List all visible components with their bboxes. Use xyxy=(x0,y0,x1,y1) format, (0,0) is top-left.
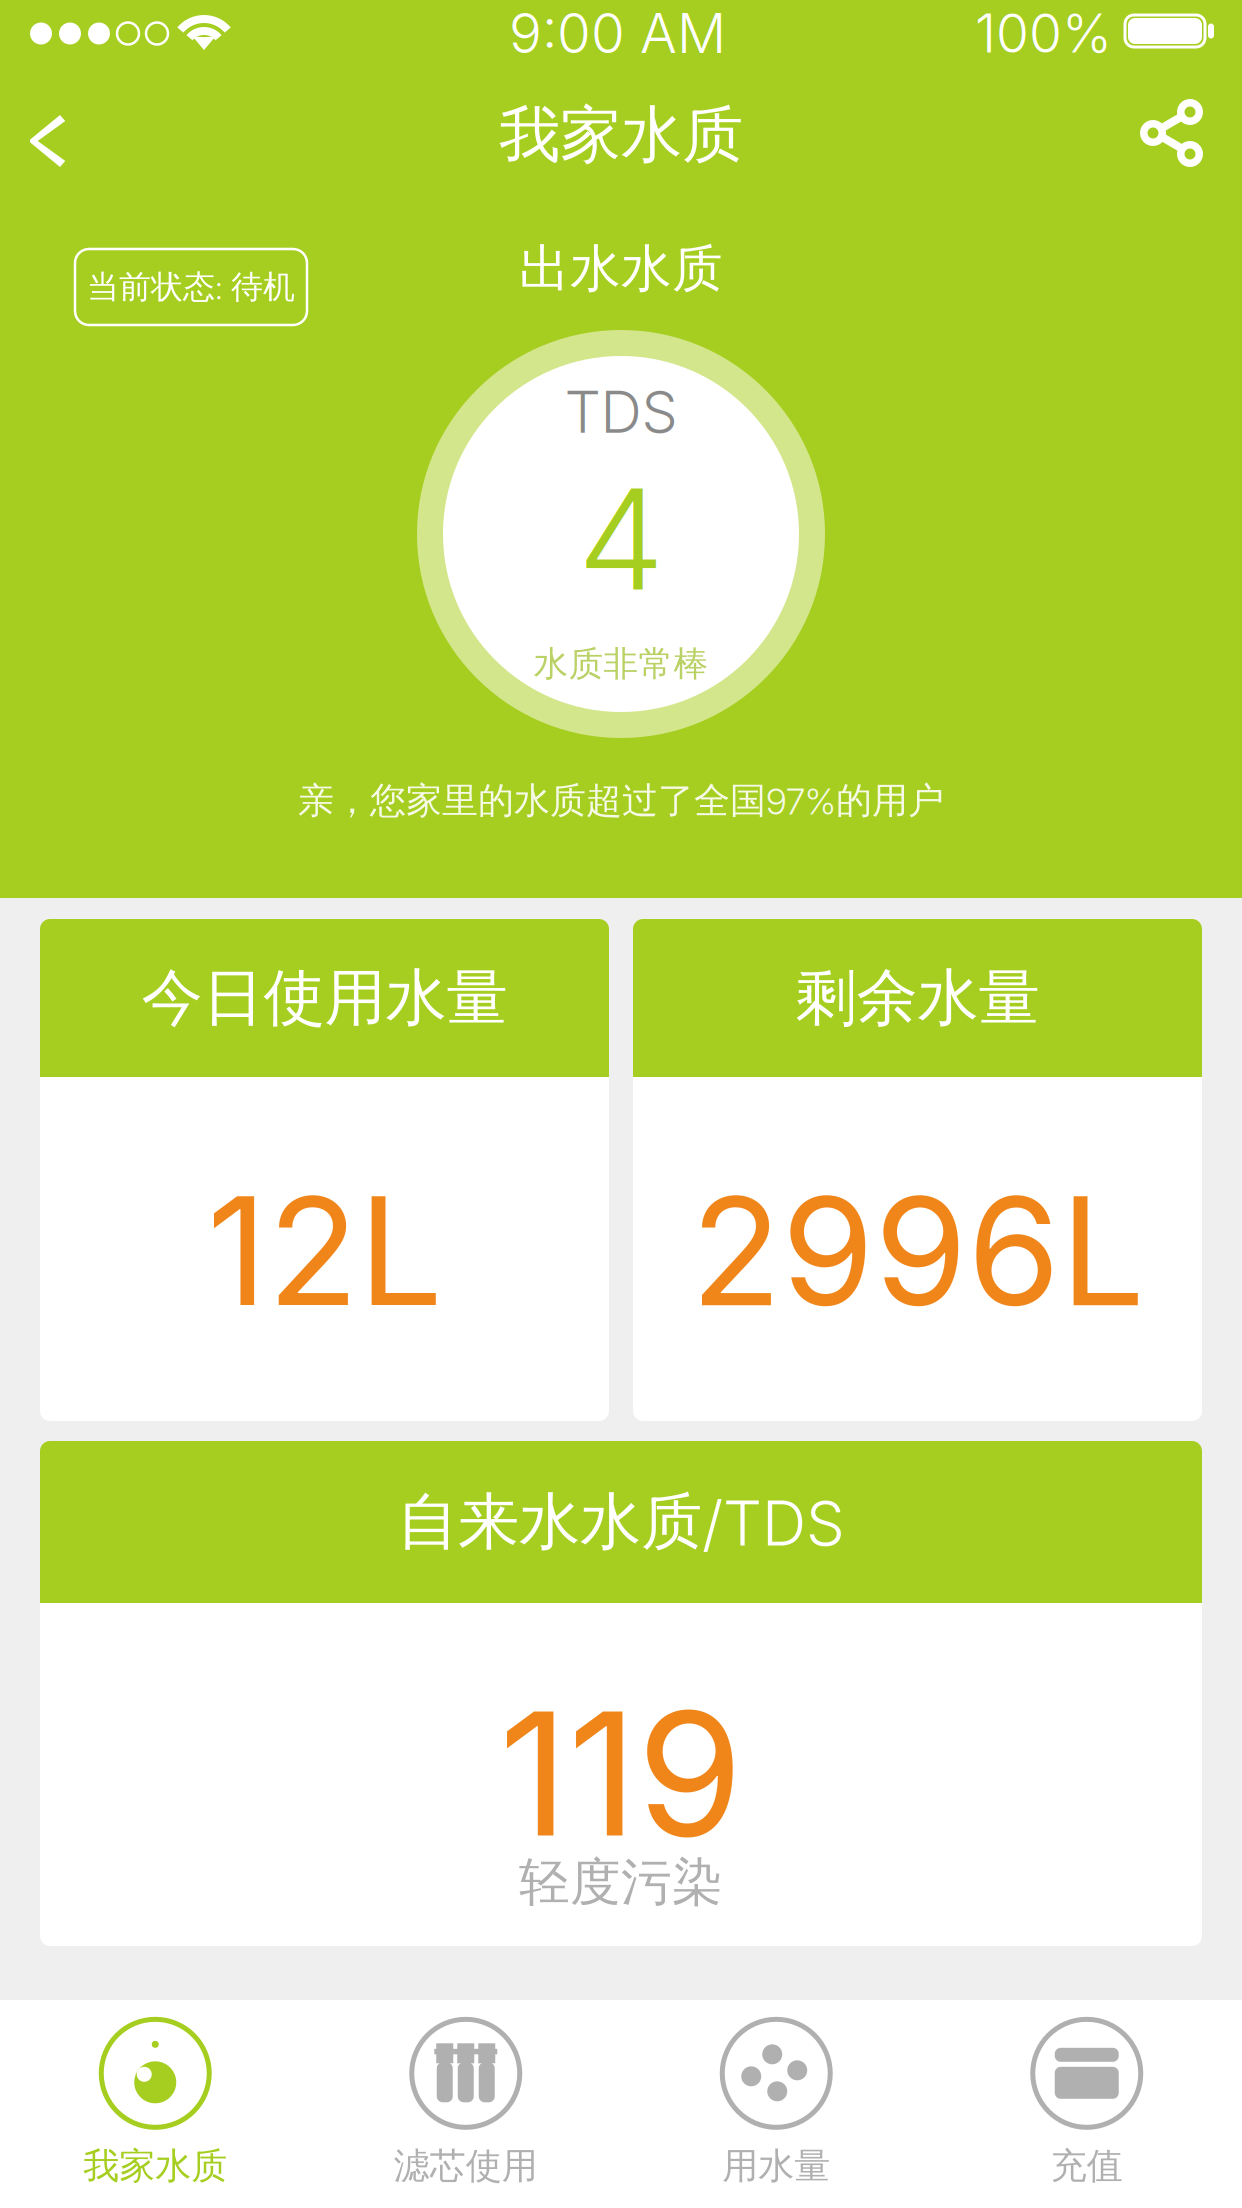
button[interactable]: 我家水质 xyxy=(0,1995,310,2208)
staticText: 出水水质 xyxy=(519,237,723,301)
button[interactable]: Back xyxy=(0,62,100,184)
button[interactable]: 滤芯使用 xyxy=(310,1995,621,2208)
button[interactable]: Share xyxy=(1106,62,1242,184)
staticText: 亲，您家里的水质超过了全国97%的用户 xyxy=(298,778,944,823)
staticText: 滤芯使用 xyxy=(394,2143,538,2189)
staticText: 自来水水质/TDS xyxy=(397,1483,845,1561)
staticText: 2996L xyxy=(690,1161,1144,1341)
staticText: 12L xyxy=(206,1161,442,1341)
button[interactable]: 用水量 xyxy=(621,1995,931,2208)
staticText: 轻度污染 xyxy=(519,1851,723,1914)
staticText: 水质非常棒 xyxy=(533,642,708,686)
staticText: 今日使用水量 xyxy=(141,959,507,1037)
staticText: 4 xyxy=(577,455,664,623)
staticText: 充值 xyxy=(1051,2143,1123,2189)
staticText: 119 xyxy=(499,1670,743,1877)
staticText: 用水量 xyxy=(722,2143,830,2189)
button[interactable]: 当前状态: 待机 xyxy=(75,249,307,325)
staticText: 当前状态: 待机 xyxy=(87,267,295,307)
staticText: 剩余水量 xyxy=(795,959,1039,1037)
staticText: 我家水质 xyxy=(499,96,743,174)
staticText: 9:00 AM xyxy=(509,0,726,66)
button[interactable]: 充值 xyxy=(931,1995,1242,2208)
staticText: 我家水质 xyxy=(83,2143,227,2189)
staticText: TDS xyxy=(564,377,677,447)
staticText: 100% xyxy=(975,1,1112,65)
